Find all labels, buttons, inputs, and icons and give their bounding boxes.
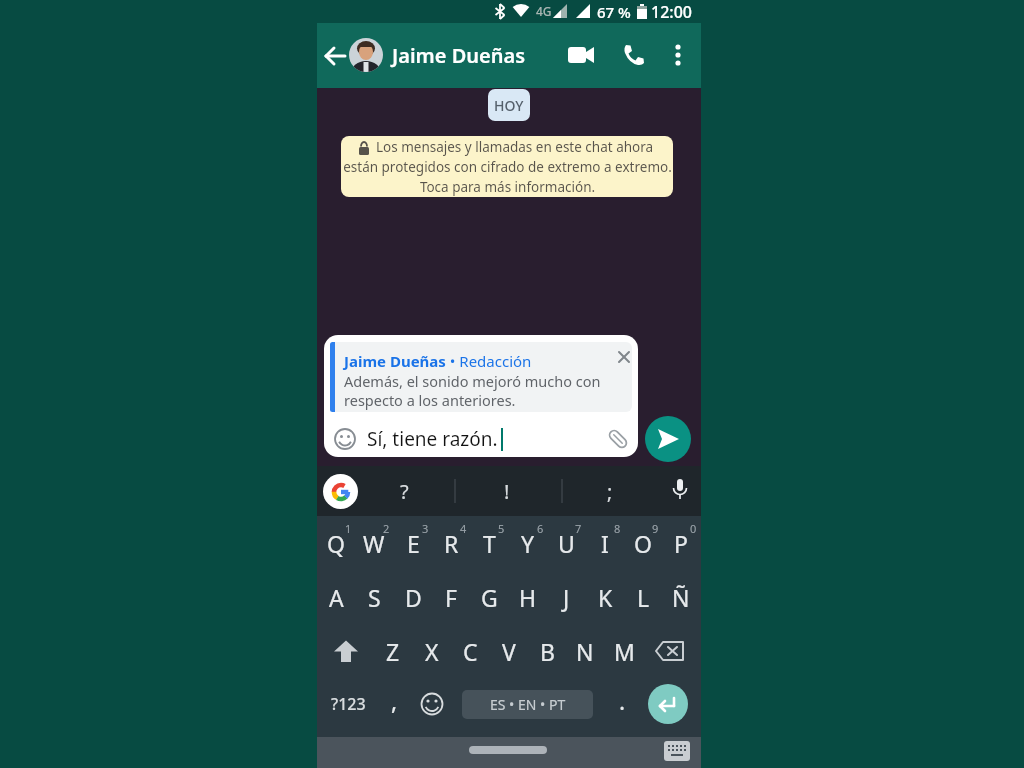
button[interactable]: V [490,634,528,668]
button[interactable] [622,43,646,67]
button[interactable]: P [662,526,700,560]
staticText: 3 [422,521,429,536]
button[interactable] [332,639,360,664]
button[interactable]: N [566,634,604,668]
staticText: R [444,528,459,559]
staticText: T [483,528,496,559]
button[interactable]: D [394,580,432,614]
button[interactable] [645,416,691,462]
button[interactable]: Los mensajes y llamadas en este chat aho… [341,136,673,197]
button[interactable]: L [624,580,662,614]
button[interactable]: I [586,526,624,560]
staticText: 7 [575,521,582,536]
staticText: H [519,582,537,613]
staticText: ES • EN • PT [490,695,566,714]
staticText: A [329,582,344,613]
button[interactable]: , [354,683,434,717]
button[interactable]: E [394,526,432,560]
button[interactable]: M [605,634,643,668]
button[interactable]: Z [374,634,412,668]
staticText: Jaime Dueñas [392,42,526,69]
staticText: G [481,582,498,613]
staticText: U [558,528,575,559]
button[interactable]: ! [467,474,547,508]
button[interactable] [668,43,688,67]
button[interactable] [420,692,444,716]
button[interactable]: Q [317,526,355,560]
staticText: L [637,582,650,613]
staticText: X [425,636,439,667]
staticText: 4 [460,521,467,536]
staticText: 67 % [597,2,631,22]
button[interactable]: Y [509,526,547,560]
staticText: Los mensajes y llamadas en este chat aho… [343,138,672,196]
staticText: 12:00 [651,1,692,23]
staticText: 5 [498,521,505,536]
button[interactable]: B [528,634,566,668]
staticText: V [502,636,516,667]
staticText: S [368,582,381,613]
staticText: I [601,528,609,559]
staticText: ? [400,478,409,505]
staticText: O [634,528,652,559]
staticText: , [391,685,398,716]
button[interactable]: H [509,580,547,614]
staticText: Q [327,528,345,559]
staticText: M [614,636,635,667]
staticText: K [598,582,613,613]
staticText: ; [607,478,613,505]
staticText: . [619,685,626,716]
staticText: F [445,582,457,613]
button[interactable]: ? [364,474,444,508]
button[interactable]: S [355,580,393,614]
button[interactable]: A [317,580,355,614]
button[interactable]: W [355,526,393,560]
button[interactable] [654,639,686,663]
button[interactable] [349,38,383,72]
staticText: ! [504,478,510,505]
staticText: Sí, tiene razón. [367,426,498,452]
staticText: B [540,636,555,667]
button[interactable] [664,741,690,761]
staticText: 8 [614,521,621,536]
button[interactable]: Ñ [662,580,700,614]
staticText: Jaime Dueñas • Redacción [344,351,532,371]
button[interactable]: R [432,526,470,560]
staticText: ?123 [331,693,366,715]
staticText: Z [386,636,400,667]
button[interactable] [469,746,547,754]
staticText: J [563,582,570,613]
staticText: 1 [345,521,352,536]
button[interactable]: J [547,580,585,614]
button[interactable] [322,43,348,69]
staticText: C [463,636,478,667]
button[interactable] [648,684,688,724]
staticText: 4G [536,3,552,19]
button[interactable] [606,427,630,451]
staticText: N [576,636,594,667]
button[interactable]: ES • EN • PT [462,690,593,719]
button[interactable]: X [413,634,451,668]
button[interactable] [616,349,632,365]
button[interactable]: K [586,580,624,614]
button[interactable]: G [470,580,508,614]
button[interactable]: ?123 [308,687,388,721]
staticText: D [405,582,422,613]
button[interactable]: ; [570,474,650,508]
button[interactable] [334,428,356,450]
staticText: 9 [652,521,659,536]
button[interactable]: C [451,634,489,668]
staticText: HOY [494,96,524,115]
button[interactable]: U [547,526,585,560]
button[interactable] [323,474,358,509]
staticText: 2 [383,521,390,536]
button[interactable] [566,42,596,68]
button[interactable]: T [470,526,508,560]
button[interactable]: O [624,526,662,560]
staticText: W [363,528,385,559]
button[interactable] [668,478,692,505]
button[interactable]: F [432,580,470,614]
staticText: Además, el sonido mejoró mucho con respe… [344,371,601,410]
staticText: E [407,528,420,559]
button[interactable]: . [582,683,662,717]
